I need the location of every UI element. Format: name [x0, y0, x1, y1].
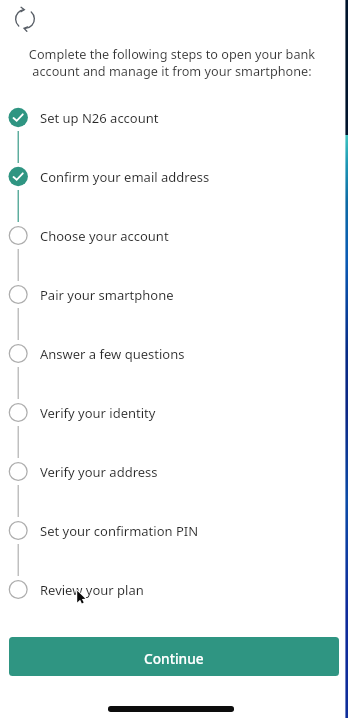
- staticText: Set up N26 account: [40, 109, 159, 127]
- staticText: Set your confirmation PIN: [40, 522, 199, 540]
- button[interactable]: Refresh: [13, 7, 36, 30]
- button[interactable]: Verify your identity: [0, 393, 348, 452]
- button[interactable]: Review your plan: [0, 570, 348, 629]
- staticText: Verify your address: [40, 463, 158, 481]
- staticText: Continue: [144, 649, 204, 668]
- button[interactable]: Continue: [9, 637, 339, 676]
- button[interactable]: Confirm your email address: [0, 157, 348, 216]
- staticText: Confirm your email address: [40, 168, 210, 186]
- staticText: Choose your account: [40, 227, 169, 245]
- button[interactable]: Verify your address: [0, 452, 348, 511]
- staticText: Verify your identity: [40, 404, 156, 422]
- button[interactable]: Set your confirmation PIN: [0, 511, 348, 570]
- button[interactable]: Pair your smartphone: [0, 275, 348, 334]
- button[interactable]: Set up N26 account: [0, 98, 348, 157]
- staticText: Answer a few questions: [40, 345, 185, 363]
- staticText: Pair your smartphone: [40, 286, 174, 304]
- staticText: Review your plan: [40, 581, 144, 599]
- button[interactable]: Answer a few questions: [0, 334, 348, 393]
- staticText: Complete the following steps to open you…: [16, 45, 328, 80]
- button[interactable]: Choose your account: [0, 216, 348, 275]
